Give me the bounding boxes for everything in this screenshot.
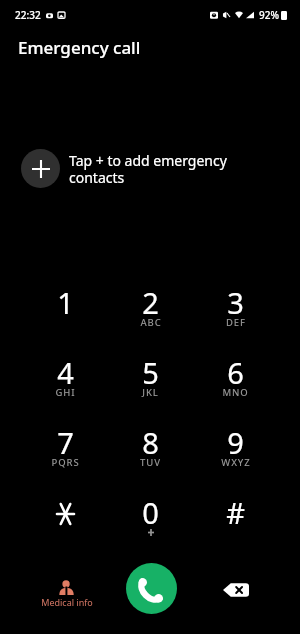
button[interactable]: Call	[126, 563, 177, 614]
button[interactable]: 2	[108, 283, 193, 353]
staticText: 8	[142, 423, 159, 462]
staticText: PQRS	[51, 456, 80, 469]
staticText: 1	[57, 283, 74, 322]
staticText: 9	[227, 423, 244, 462]
staticText: 3	[227, 283, 244, 322]
staticText: 22:32	[15, 8, 41, 22]
button[interactable]: 3	[193, 283, 278, 353]
button[interactable]: 5	[108, 353, 193, 423]
button[interactable]: 4	[22, 353, 108, 423]
staticText: Tap + to add emergency contacts	[69, 151, 244, 187]
staticText: 2	[142, 283, 159, 322]
button[interactable]: 8	[108, 423, 193, 493]
button[interactable]: Backspace	[218, 576, 254, 604]
staticText: 7	[57, 423, 74, 462]
staticText: MNO	[222, 386, 249, 399]
button[interactable]: Medical info	[26, 578, 107, 608]
staticText: Emergency call	[18, 36, 141, 59]
staticText: 4	[57, 353, 74, 392]
staticText: ABC	[140, 316, 162, 329]
staticText: JKL	[142, 386, 159, 399]
button[interactable]: 6	[193, 353, 278, 423]
button[interactable]: 1	[22, 283, 108, 353]
staticText: 5	[142, 353, 159, 392]
staticText: 92%	[259, 8, 279, 22]
button[interactable]: Tap + to add emergency contacts	[0, 143, 300, 194]
staticText: GHI	[55, 386, 76, 399]
button[interactable]: 0	[108, 493, 193, 563]
button[interactable]: #	[193, 493, 278, 563]
button[interactable]: 7	[22, 423, 108, 493]
staticText: WXYZ	[221, 456, 251, 469]
button[interactable]	[22, 493, 108, 563]
button[interactable]: 9	[193, 423, 278, 493]
staticText: DEF	[226, 316, 246, 329]
staticText: 6	[227, 353, 244, 392]
staticText: #	[226, 493, 245, 532]
staticText: Medical info	[41, 596, 93, 608]
staticText: TUV	[140, 456, 161, 469]
staticText: 0	[142, 493, 159, 532]
